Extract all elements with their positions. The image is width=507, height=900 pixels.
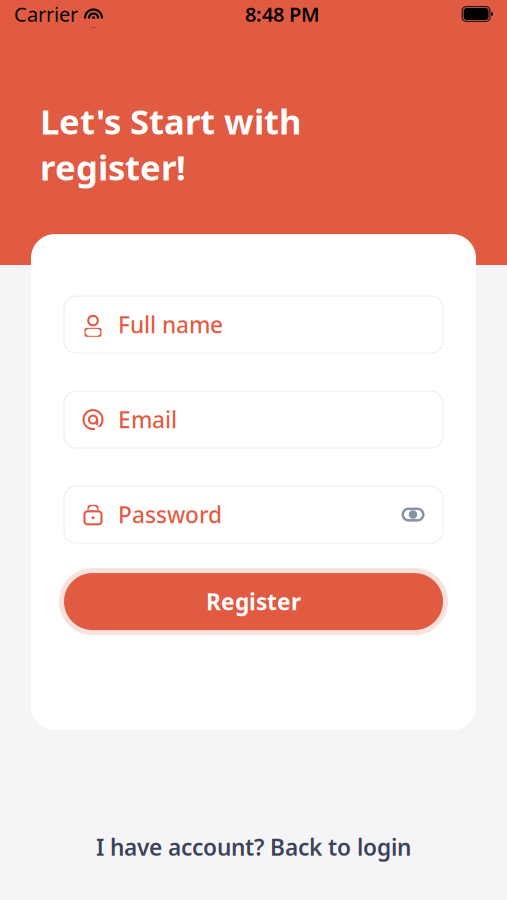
staticText: Register <box>206 586 301 617</box>
button[interactable]: Email <box>64 391 443 448</box>
staticText: Carrier <box>14 1 78 27</box>
staticText: 8:48 PM <box>245 1 320 27</box>
button[interactable]: Register <box>64 573 443 630</box>
staticText: Let's Start with register! <box>40 98 302 190</box>
staticText: Email <box>118 404 177 435</box>
button[interactable]: Full name <box>64 296 443 353</box>
button[interactable]: I have account? Back to login <box>84 824 423 870</box>
staticText: Full name <box>118 309 223 340</box>
staticText: I have account? Back to login <box>96 832 411 862</box>
button[interactable]: Password <box>64 486 443 543</box>
staticText: Password <box>118 499 222 530</box>
